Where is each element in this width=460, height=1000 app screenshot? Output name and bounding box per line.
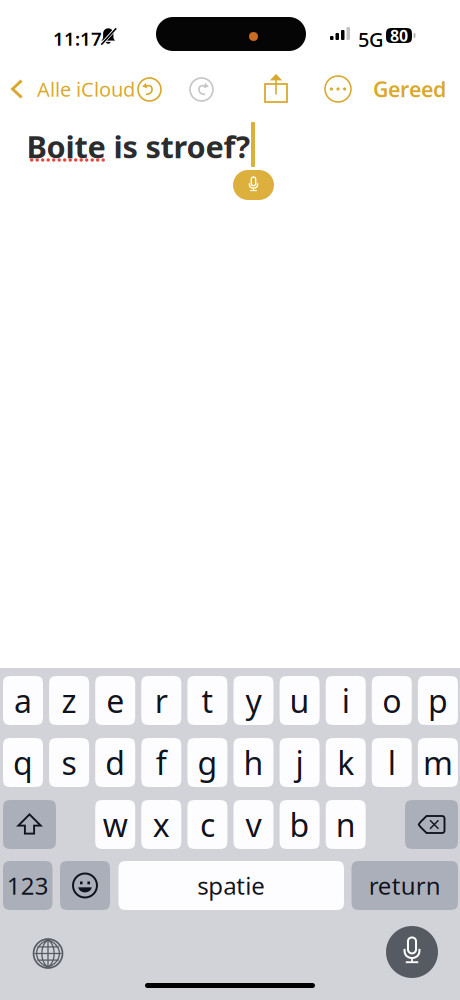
staticText: t [201,679,213,722]
staticText: f [156,741,167,784]
staticText: m [423,741,453,784]
staticText: l [388,741,396,784]
staticText: c [200,803,215,846]
staticText: x [153,803,170,846]
button[interactable]: return [351,861,458,910]
button[interactable]: 123 [3,861,52,910]
staticText: Boite is stroef? [26,126,250,167]
staticText: p [428,679,448,722]
button[interactable]: Shift [3,800,56,849]
staticText: d [105,741,125,784]
staticText: q [13,741,33,784]
staticText: r [155,679,168,722]
staticText: a [14,679,32,722]
staticText: u [290,679,310,722]
button[interactable]: Share [262,72,290,104]
staticText: h [243,741,263,784]
staticText: Alle iCloud [37,76,135,102]
staticText: 123 [7,870,49,901]
button[interactable]: Dictation [386,926,438,978]
button[interactable]: Alle iCloud [0,67,140,111]
staticText: i [342,679,350,722]
staticText: j [296,741,304,784]
button[interactable]: Dictate [233,170,274,200]
staticText: spatie [197,870,265,901]
staticText: s [62,741,77,784]
staticText: y [245,679,261,722]
staticText: w [103,803,128,846]
staticText: g [197,741,217,784]
staticText: 80 [390,25,408,46]
staticText: 11:17 [53,26,102,51]
staticText: k [337,741,354,784]
staticText: o [382,679,401,722]
button[interactable]: Gereed [355,67,460,111]
staticText: e [106,679,124,722]
button[interactable]: Delete [405,800,458,849]
button[interactable]: Redo [190,78,213,101]
staticText: b [290,803,310,846]
staticText: Gereed [373,75,446,103]
staticText: n [336,803,356,846]
staticText: return [369,870,441,901]
staticText: z [62,679,77,722]
staticText: v [245,803,261,846]
button[interactable]: Undo [138,78,161,101]
button[interactable]: Emoji [60,861,110,910]
staticText: 5G [358,26,384,53]
button[interactable]: More [325,76,351,102]
button[interactable]: spatie [118,861,344,910]
button[interactable]: Next keyboard [33,939,62,968]
